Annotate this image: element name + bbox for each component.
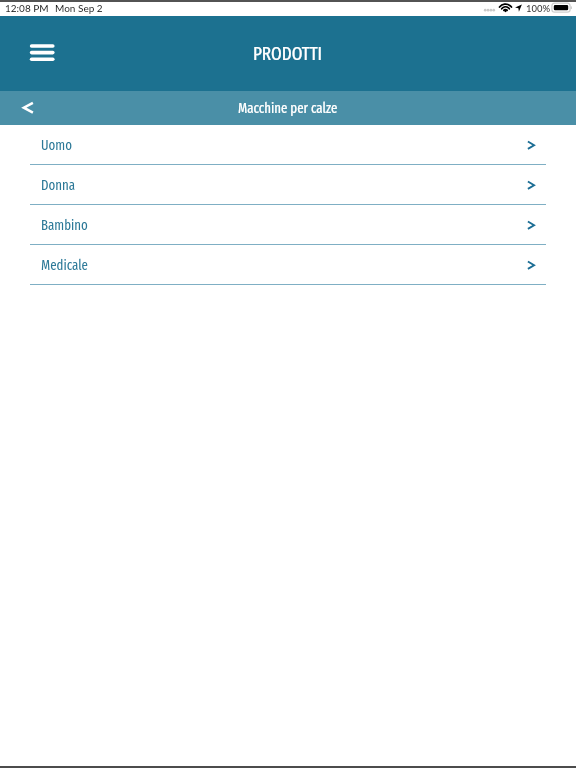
button[interactable]: Medicale — [30, 245, 546, 285]
button[interactable]: Back — [0, 91, 52, 125]
button[interactable]: Menu — [18, 30, 65, 78]
staticText: Uomo — [41, 137, 72, 154]
staticText: PRODOTTI — [253, 43, 323, 65]
staticText: Medicale — [41, 257, 88, 274]
button[interactable]: Donna — [30, 165, 546, 205]
button[interactable]: Bambino — [30, 205, 546, 245]
staticText: 12:08 PM — [5, 2, 49, 14]
staticText: Macchine per calze — [238, 100, 338, 117]
staticText: 100% — [526, 3, 551, 14]
staticText: Bambino — [41, 217, 88, 234]
staticText: Donna — [41, 177, 76, 194]
staticText: Mon Sep 2 — [55, 2, 103, 14]
button[interactable]: Uomo — [30, 125, 546, 165]
